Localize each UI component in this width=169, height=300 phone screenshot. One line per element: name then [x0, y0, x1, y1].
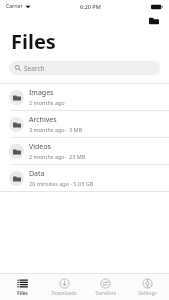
- button[interactable]: Videos: [0, 138, 169, 164]
- staticText: 3 months ago · 3 MB: [29, 126, 83, 133]
- staticText: Settings: [138, 290, 157, 297]
- staticText: Carrier: [6, 3, 23, 10]
- staticText: Transfers: [95, 290, 116, 297]
- button[interactable]: Images: [0, 84, 169, 110]
- staticText: Files: [11, 28, 56, 55]
- staticText: Files: [17, 290, 28, 297]
- button[interactable]: Transfers: [86, 278, 124, 297]
- staticText: Data: [29, 169, 45, 179]
- staticText: 20 minutes ago · 5.03 GB: [29, 180, 94, 187]
- button[interactable]: New folder: [147, 14, 161, 28]
- button[interactable]: Data: [0, 165, 169, 191]
- staticText: Images: [29, 88, 54, 98]
- button[interactable]: Downloads: [45, 278, 83, 297]
- staticText: 6:20 PM: [80, 3, 101, 10]
- button[interactable]: Files: [3, 278, 41, 297]
- staticText: Videos: [29, 142, 51, 152]
- button[interactable]: Archives: [0, 111, 169, 137]
- staticText: Search: [24, 64, 45, 73]
- button[interactable]: Settings: [128, 278, 166, 297]
- button[interactable]: Search: [9, 61, 160, 75]
- staticText: Archives: [29, 115, 57, 125]
- staticText: 2 months ago · 23 MB: [29, 153, 86, 160]
- staticText: 2 months ago: [29, 99, 65, 106]
- staticText: Downloads: [51, 290, 77, 297]
